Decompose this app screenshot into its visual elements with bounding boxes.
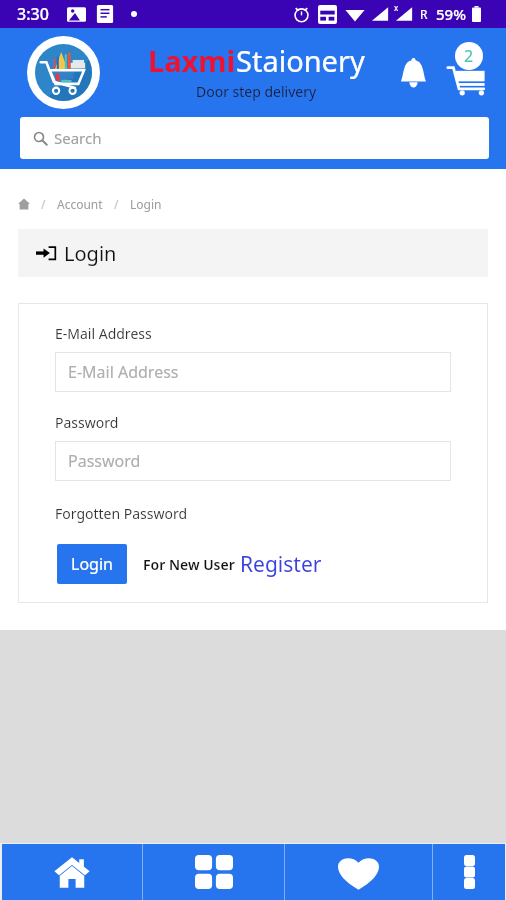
staticText: Search (54, 128, 102, 148)
staticText: R (420, 6, 428, 22)
staticText: Password (68, 450, 141, 472)
button[interactable]: Favourites (285, 844, 432, 900)
staticText: E-Mail Address (55, 324, 152, 343)
button[interactable]: Laxmi Staionery home (27, 36, 100, 109)
staticText: / (114, 196, 119, 212)
button[interactable]: Search (20, 117, 489, 159)
button[interactable]: Categories (143, 844, 284, 900)
staticText: Laxmi (148, 41, 236, 80)
button[interactable]: Cart, 2 items (442, 40, 494, 100)
staticText: Staionery (236, 41, 365, 80)
staticText: 59% (436, 4, 466, 24)
staticText: Login (71, 553, 113, 575)
staticText: x (394, 2, 399, 13)
staticText: 3:30 (17, 3, 49, 25)
button[interactable]: Register (240, 550, 322, 579)
button[interactable]: Login (18, 229, 488, 277)
button[interactable]: Forgotten Password (55, 504, 188, 523)
staticText: Door step delivery (196, 82, 317, 101)
button[interactable]: Notifications (395, 56, 432, 93)
staticText: For New User (143, 555, 235, 574)
button[interactable]: Home (2, 844, 142, 900)
button[interactable]: Password (55, 441, 451, 481)
staticText: Login (64, 240, 117, 267)
button[interactable]: Login (57, 544, 127, 584)
staticText: E-Mail Address (68, 361, 179, 383)
staticText: Login (130, 196, 162, 212)
staticText: / (41, 196, 46, 212)
staticText: 2 (464, 45, 474, 67)
button[interactable]: E-Mail Address (55, 352, 451, 392)
staticText: Account (57, 196, 103, 212)
button[interactable]: More options (433, 844, 505, 900)
staticText: Password (55, 413, 119, 432)
